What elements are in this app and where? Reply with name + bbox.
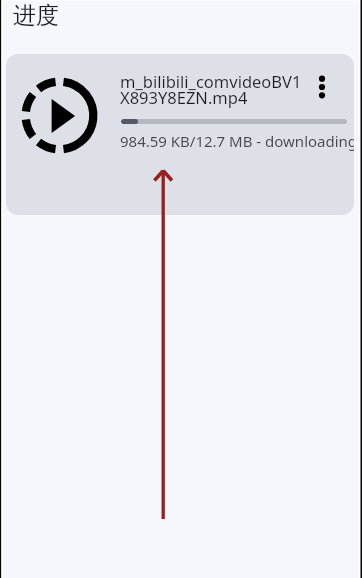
staticText: m_bilibili_comvideoBV1X893Y8EZN.mp4 (120, 70, 306, 109)
staticText: 进度 (13, 1, 59, 30)
button[interactable]: More options (310, 75, 334, 99)
staticText: 984.59 KB/12.7 MB - downloading (120, 131, 354, 151)
button[interactable]: Pause download (21, 77, 98, 154)
button[interactable]: Pause download (6, 54, 354, 215)
